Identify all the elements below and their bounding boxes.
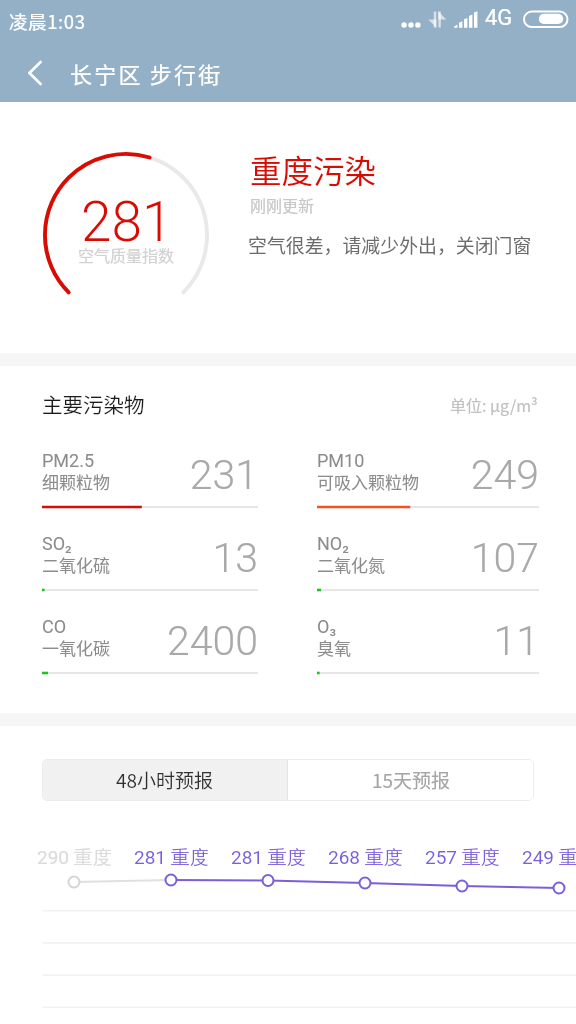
staticText: 主要污染物 (42, 389, 145, 419)
staticText: 单位: μg/m³ (450, 393, 538, 416)
staticText: 长宁区 步行街 (70, 57, 223, 89)
staticText: 空气很差，请减少外出，关闭门窗 (248, 231, 532, 258)
staticText: 一氧化碳 (42, 635, 110, 660)
button[interactable]: SO₂ (42, 532, 258, 604)
staticText: 249 重度 (522, 846, 576, 870)
staticText: 二氧化硫 (42, 552, 110, 577)
staticText: 空气质量指数 (78, 243, 175, 266)
staticText: 281 (81, 190, 173, 254)
staticText: 刚刚更新 (250, 193, 315, 216)
staticText: 257 重度 (425, 846, 500, 870)
button[interactable]: 15天预报 (288, 759, 534, 801)
button[interactable]: NO₂ (317, 532, 539, 604)
staticText: SO₂ (42, 533, 72, 554)
staticText: 二氧化氮 (317, 552, 385, 577)
staticText: 2400 (42, 617, 258, 665)
button[interactable]: Back (6, 44, 64, 102)
button[interactable]: O₃ (317, 615, 539, 687)
button[interactable]: PM10 (317, 449, 539, 521)
staticText: PM10 (317, 450, 365, 471)
staticText: 13 (42, 534, 258, 582)
staticText: 231 (42, 451, 258, 499)
staticText: PM2.5 (42, 450, 95, 471)
staticText: 重度污染 (250, 146, 377, 192)
staticText: 凌晨1:03 (9, 8, 86, 35)
staticText: 细颗粒物 (42, 469, 110, 494)
staticText: 4G (485, 5, 513, 31)
staticText: 107 (317, 534, 539, 582)
staticText: 48小时预报 (116, 766, 214, 794)
button[interactable]: PM2.5 (42, 449, 258, 521)
staticText: 281 重度 (231, 846, 306, 870)
staticText: CO (42, 616, 67, 637)
button[interactable]: CO (42, 615, 258, 687)
staticText: 268 重度 (328, 846, 403, 870)
staticText: 可吸入颗粒物 (317, 469, 419, 494)
staticText: O₃ (317, 616, 336, 637)
staticText: 臭氧 (317, 635, 351, 660)
button[interactable]: 48小时预报 (42, 759, 287, 801)
staticText: 281 重度 (134, 846, 209, 870)
staticText: 249 (317, 451, 539, 499)
staticText: 15天预报 (372, 766, 451, 794)
staticText: NO₂ (317, 533, 349, 554)
staticText: 11 (317, 617, 539, 665)
staticText: 290 重度 (37, 846, 112, 870)
